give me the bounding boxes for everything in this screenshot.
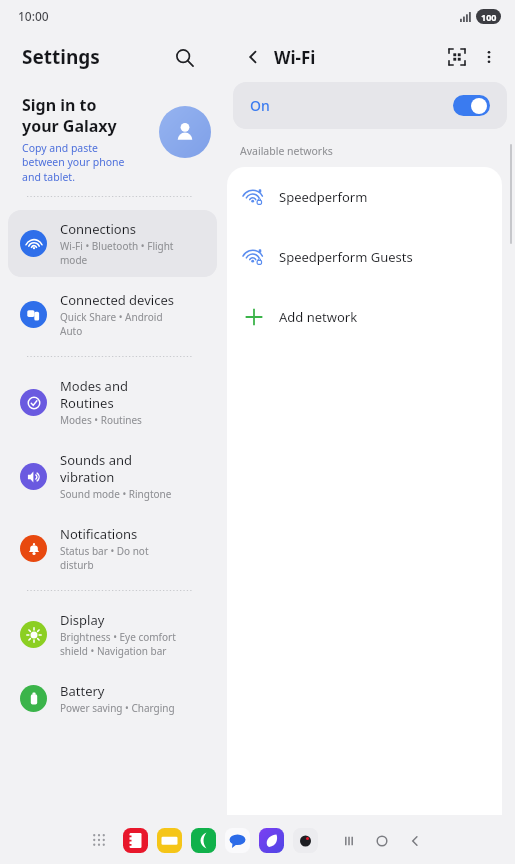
button[interactable]: Camera <box>288 823 322 857</box>
staticText: On <box>250 96 270 115</box>
button[interactable]: Modes and Routines <box>8 367 217 437</box>
staticText: Battery <box>60 682 105 700</box>
button[interactable]: On <box>233 82 507 129</box>
button[interactable]: Apps <box>84 825 114 855</box>
staticText: Modes and Routines <box>60 377 128 412</box>
button[interactable]: Back <box>398 824 431 857</box>
staticText: 100 <box>481 11 497 23</box>
button[interactable]: Search <box>167 40 201 74</box>
staticText: Sign in to your Galaxy <box>22 94 117 137</box>
staticText: Power saving • Charging <box>60 701 175 715</box>
button[interactable]: Connected devices <box>8 281 217 348</box>
button[interactable]: Notifications <box>8 515 217 582</box>
button[interactable]: Samsung Notes <box>118 823 152 857</box>
staticText: Speedperform <box>279 188 368 206</box>
staticText: Status bar • Do not disturb <box>60 544 149 572</box>
staticText: Available networks <box>240 144 333 158</box>
button[interactable]: Battery <box>8 672 217 725</box>
button[interactable]: Messages <box>220 823 254 857</box>
button[interactable]: Scan QR code <box>441 41 473 73</box>
staticText: Notifications <box>60 525 138 543</box>
button[interactable]: Speedperform Guests <box>227 227 502 287</box>
staticText: Quick Share • Android Auto <box>60 310 163 338</box>
staticText: Sound mode • Ringtone <box>60 487 172 501</box>
button[interactable]: Back <box>237 41 269 73</box>
staticText: Wi-Fi <box>274 46 316 69</box>
staticText: Copy and paste between your phone and ta… <box>22 141 125 184</box>
staticText: Wi-Fi • Bluetooth • Flight mode <box>60 239 174 267</box>
staticText: Connections <box>60 220 136 238</box>
button[interactable]: Recents <box>332 824 365 857</box>
button[interactable]: Display <box>8 601 217 668</box>
staticText: Display <box>60 611 105 629</box>
button[interactable]: Sign in to your Galaxy <box>22 94 211 184</box>
button[interactable]: Speedperform <box>227 167 502 227</box>
button[interactable]: Phone <box>186 823 220 857</box>
button[interactable]: Home <box>365 824 398 857</box>
button[interactable]: More options <box>473 41 505 73</box>
button[interactable]: Connections <box>8 210 217 277</box>
staticText: Brightness • Eye comfort shield • Naviga… <box>60 630 176 658</box>
staticText: Connected devices <box>60 291 174 309</box>
staticText: 10:00 <box>18 8 49 24</box>
button[interactable]: Add network <box>227 287 502 347</box>
button[interactable]: Internet <box>254 823 288 857</box>
staticText: Settings <box>22 44 100 70</box>
staticText: Speedperform Guests <box>279 248 413 266</box>
button[interactable]: My Files <box>152 823 186 857</box>
staticText: Modes • Routines <box>60 413 142 427</box>
staticText: Add network <box>279 308 358 326</box>
button[interactable]: Sounds and vibration <box>8 441 217 511</box>
staticText: Sounds and vibration <box>60 451 132 486</box>
